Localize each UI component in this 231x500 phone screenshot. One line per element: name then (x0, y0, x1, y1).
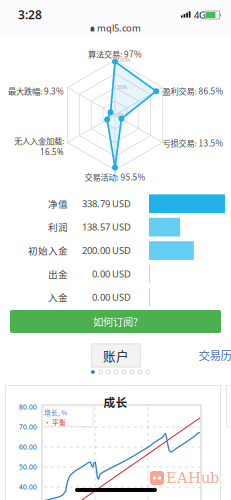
staticText: 60.00 (19, 443, 37, 451)
staticText: 出金 (48, 267, 68, 281)
staticText: 0.00 USD (92, 268, 131, 280)
staticText: 利润 (48, 220, 68, 234)
staticText: 70.00 (19, 423, 37, 431)
staticText: 亏损交易: 13.5% (162, 137, 223, 149)
staticText: 入金 (48, 290, 68, 304)
staticText: 算法交易: 97% (88, 48, 142, 60)
staticText: mql5.com (97, 22, 141, 34)
staticText: 338.79 USD (82, 197, 131, 210)
staticText: 138.57 USD (82, 221, 131, 233)
staticText: 初始入金 (28, 243, 68, 257)
staticText: 80.00 (19, 403, 37, 411)
staticText: 交易历 (198, 347, 231, 363)
staticText: 16.5% (40, 147, 64, 157)
staticText: 交易活动: 95.5% (84, 171, 145, 183)
staticText: 200.00 USD (82, 244, 131, 257)
staticText: 0.00 USD (92, 291, 131, 303)
button[interactable]: 账户 (91, 343, 141, 367)
staticText: 3:28 (18, 6, 42, 22)
staticText: 无人入金加载: (14, 135, 64, 147)
staticText: 50% (117, 83, 127, 91)
button[interactable]: 如何订阅? (10, 310, 221, 333)
staticText: 50.00 (19, 463, 37, 471)
staticText: 4G (194, 9, 206, 21)
staticText: 40.00 (19, 483, 37, 491)
staticText: 净值 (48, 196, 68, 210)
staticText: • 平衡 (44, 417, 66, 427)
staticText: 盈利交易: 86.5% (162, 85, 223, 97)
staticText: 如何订阅? (93, 314, 138, 329)
staticText: 0% (117, 111, 124, 119)
staticText: EAHub (166, 469, 219, 487)
staticText: 账户 (103, 346, 129, 364)
button[interactable]: 交易历 (198, 347, 231, 363)
staticText: 增长, % (44, 407, 67, 417)
staticText: 100% (117, 56, 130, 64)
staticText: 最大跌幅: 9.3% (8, 85, 64, 97)
staticText: 成长 (103, 393, 127, 410)
